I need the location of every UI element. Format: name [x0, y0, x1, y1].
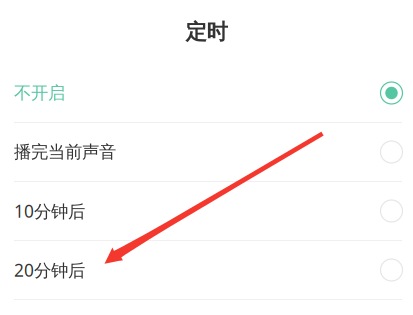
- button[interactable]: 20分钟后: [0, 241, 413, 300]
- button[interactable]: 不开启: [0, 64, 413, 123]
- button[interactable]: 10分钟后: [0, 182, 413, 241]
- staticText: 10分钟后: [14, 199, 85, 222]
- staticText: 不开启: [14, 82, 65, 104]
- staticText: 定时: [185, 19, 227, 45]
- staticText: 播完当前声音: [14, 141, 116, 163]
- staticText: 20分钟后: [14, 258, 85, 281]
- button[interactable]: 播完当前声音: [0, 123, 413, 182]
